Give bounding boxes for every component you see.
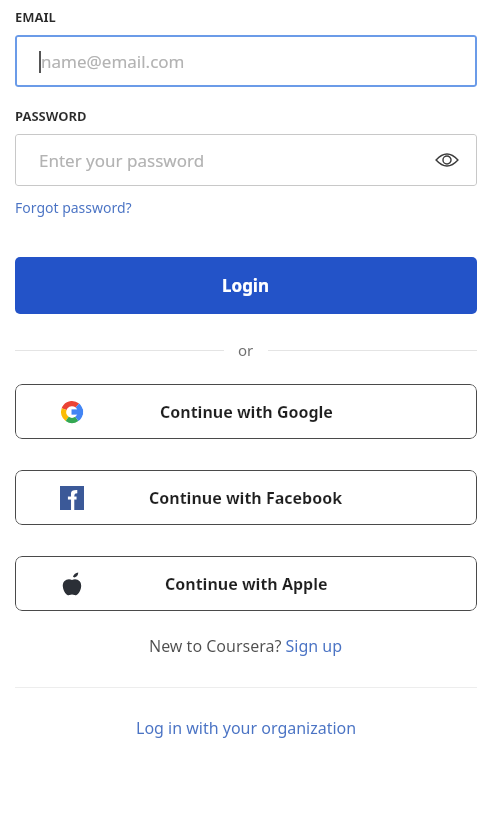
button[interactable]: Show password (431, 144, 463, 176)
staticText: EMAIL (15, 8, 56, 26)
staticText: Continue with Apple (165, 573, 328, 595)
button[interactable]: Continue with Google (15, 384, 477, 439)
button[interactable]: Enter your password (15, 134, 477, 186)
staticText: New to Coursera? Sign up (149, 635, 343, 657)
staticText: Login (222, 274, 270, 297)
button[interactable]: Continue with Apple (15, 556, 477, 611)
staticText: PASSWORD (15, 107, 87, 125)
staticText: or (238, 340, 254, 360)
staticText: name@email.com (41, 50, 185, 73)
staticText: Continue with Google (160, 401, 333, 423)
button[interactable]: Log in with your organization (136, 717, 357, 739)
staticText: Log in with your organization (136, 717, 357, 739)
staticText: Forgot password? (15, 198, 132, 217)
button[interactable]: name@email.com (15, 35, 477, 87)
staticText: Continue with Facebook (149, 487, 343, 509)
button[interactable]: New to Coursera? Sign up (149, 635, 343, 657)
button[interactable]: Continue with Facebook (15, 470, 477, 525)
button[interactable]: Login (15, 257, 477, 314)
staticText: Enter your password (39, 149, 205, 172)
button[interactable]: Forgot password? (15, 198, 132, 217)
